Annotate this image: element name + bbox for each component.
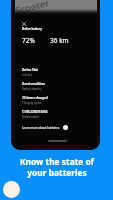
button[interactable]: App icon bbox=[3, 181, 20, 198]
button[interactable]: Good condition bbox=[22, 82, 82, 95]
staticText: Active battery bbox=[22, 27, 42, 31]
staticText: Serial number bbox=[22, 115, 40, 119]
button[interactable]: T-VBL2200015055 bbox=[22, 110, 82, 123]
staticText: your batteries bbox=[27, 167, 87, 178]
staticText: Battery capacity bbox=[22, 87, 42, 91]
staticText: Charging cycles bbox=[22, 101, 42, 105]
staticText: Good condition bbox=[22, 82, 45, 86]
staticText: Scooter bbox=[15, 0, 51, 16]
staticText: Know the state of bbox=[20, 156, 94, 167]
staticText: Learn more about batteries bbox=[22, 126, 60, 130]
staticText: 72% bbox=[22, 36, 35, 45]
button[interactable]: Active Slot bbox=[22, 68, 82, 81]
button[interactable]: Learn more about batteries bbox=[21, 123, 78, 132]
button[interactable]: Close bbox=[19, 19, 29, 29]
staticText: Left slot bbox=[22, 73, 32, 77]
button[interactable]: 10 times charged bbox=[22, 96, 82, 109]
staticText: T-VBL2200015055 bbox=[22, 110, 48, 114]
staticText: 36 km bbox=[50, 36, 69, 45]
staticText: 10 times charged bbox=[22, 96, 48, 100]
staticText: Active Slot bbox=[22, 68, 38, 72]
